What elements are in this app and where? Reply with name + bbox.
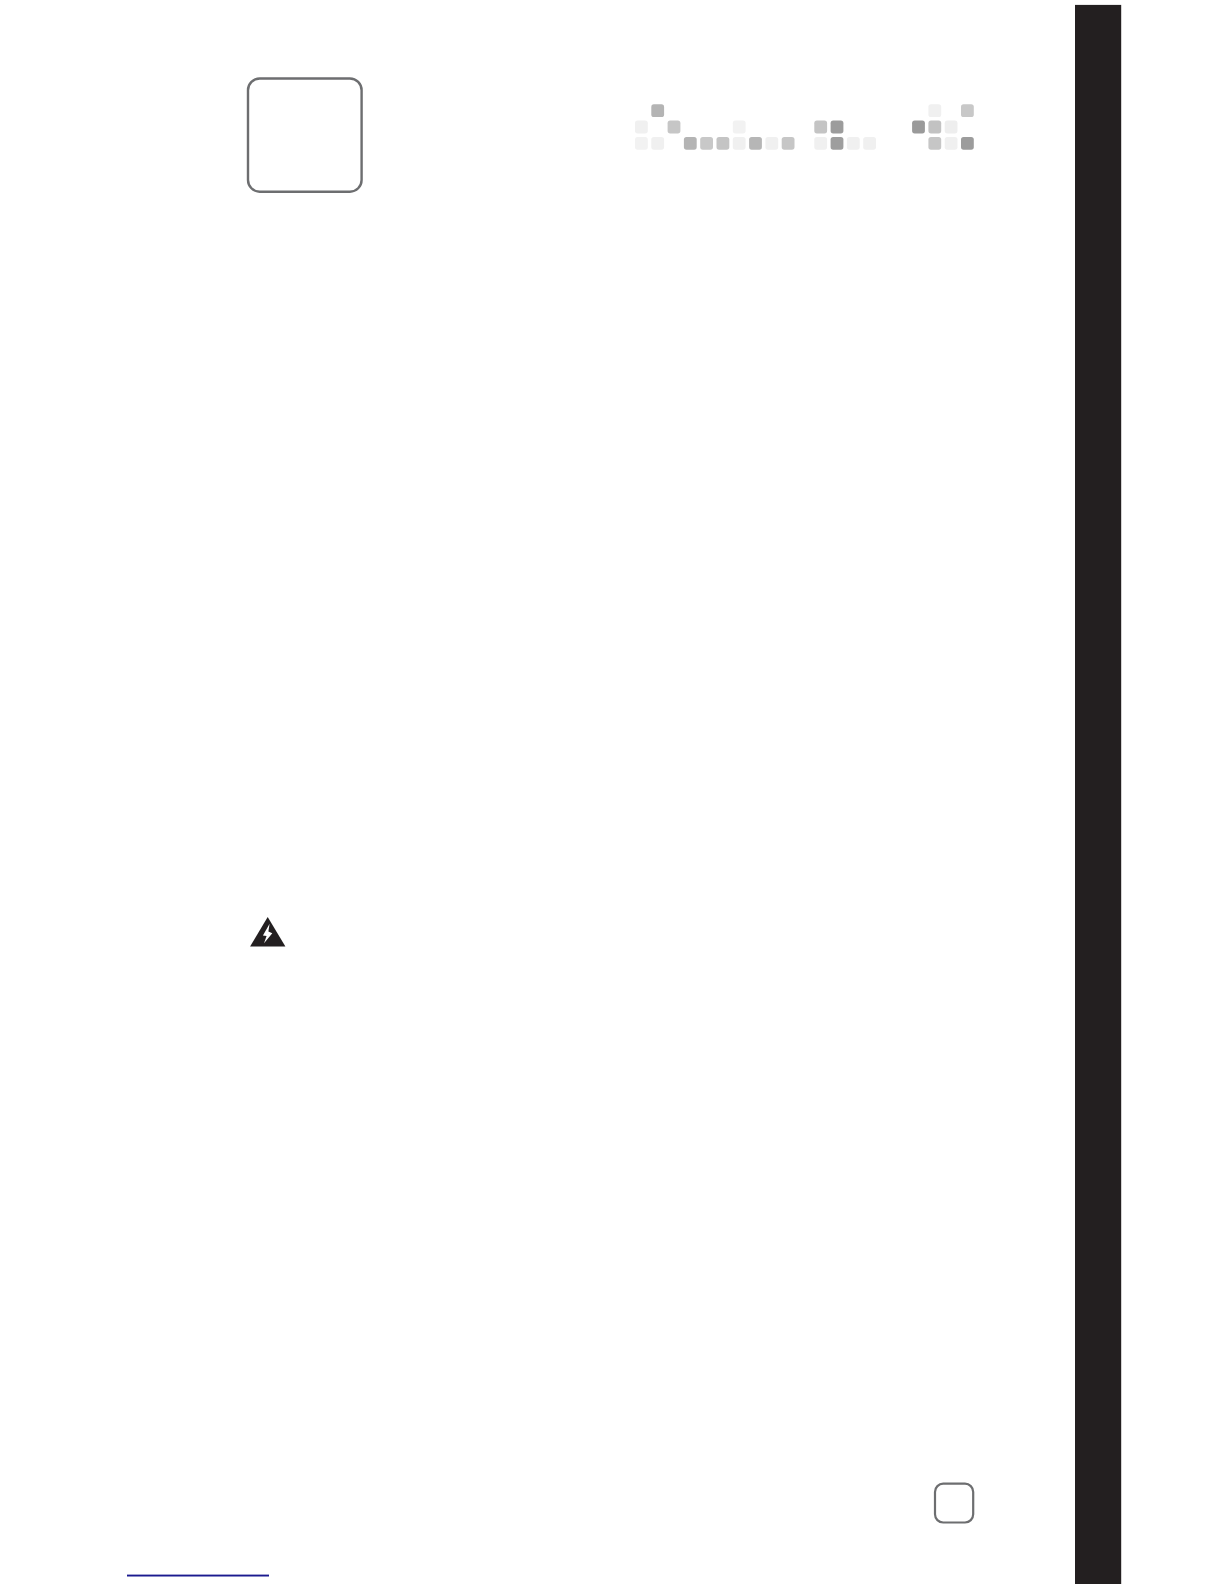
button[interactable]: Warning <box>250 917 286 947</box>
button[interactable]: Image placeholder <box>248 78 362 192</box>
button[interactable]: Link <box>127 1558 269 1578</box>
button[interactable]: Placeholder <box>935 1484 973 1522</box>
